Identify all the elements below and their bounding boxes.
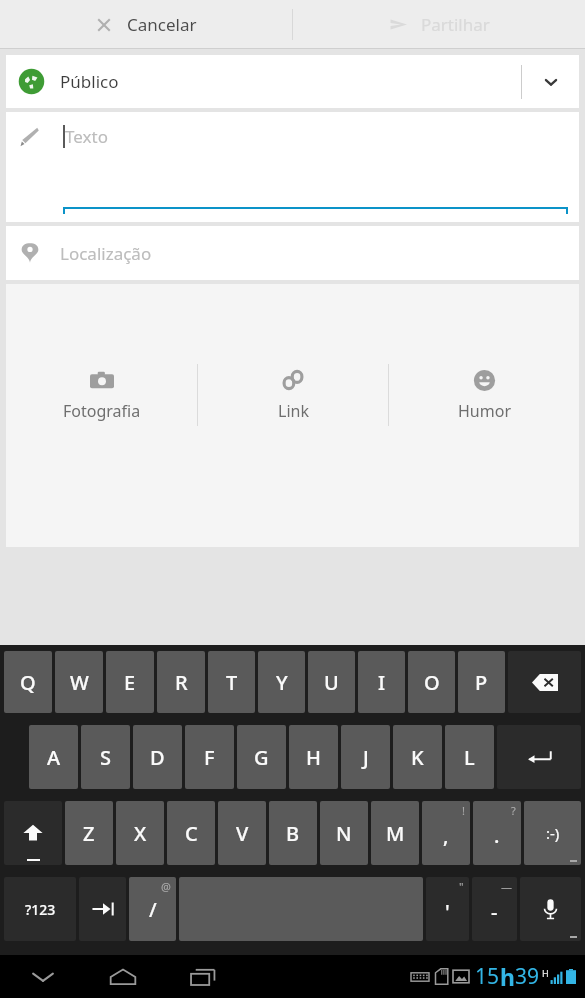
button[interactable]: Fotografia <box>6 357 197 433</box>
button[interactable]: @ <box>129 877 176 941</box>
staticText: X <box>134 820 147 847</box>
staticText: Y <box>276 669 288 696</box>
staticText: . <box>494 822 500 849</box>
staticText: F <box>204 744 215 771</box>
button[interactable]: Tab <box>79 877 126 941</box>
staticText: ' <box>445 898 450 925</box>
button[interactable]: Localização <box>6 226 579 280</box>
staticText: Q <box>20 669 36 696</box>
button[interactable]: Backspace <box>508 651 581 713</box>
button[interactable]: N <box>320 801 368 865</box>
button[interactable]: M <box>371 801 419 865</box>
button[interactable]: Shift <box>4 801 62 865</box>
staticText: S <box>100 744 111 771</box>
staticText: L <box>464 744 475 771</box>
staticText: P <box>475 669 488 696</box>
button[interactable]: U <box>308 651 355 713</box>
button[interactable]: E <box>106 651 154 713</box>
button[interactable]: Partilhar <box>293 0 585 49</box>
staticText: Link <box>278 400 309 422</box>
button[interactable]: Emoji <box>524 801 581 865</box>
button[interactable]: S <box>81 725 130 789</box>
button[interactable]: F <box>185 725 234 789</box>
staticText: ! <box>462 803 465 818</box>
button[interactable]: A <box>29 725 78 789</box>
button[interactable]: P <box>458 651 505 713</box>
button[interactable]: B <box>269 801 317 865</box>
staticText: ? <box>511 803 516 818</box>
staticText: " <box>459 879 464 894</box>
button[interactable]: R <box>157 651 205 713</box>
button[interactable]: Humor <box>389 357 579 433</box>
staticText: Cancelar <box>127 13 197 36</box>
button[interactable]: Texto <box>6 112 579 222</box>
staticText: Z <box>83 820 95 847</box>
staticText: , <box>443 822 449 849</box>
staticText: 15 <box>475 962 500 991</box>
staticText: C <box>185 820 198 847</box>
staticText: Humor <box>458 400 511 422</box>
button[interactable]: Voice input <box>520 877 581 941</box>
staticText: T <box>226 669 238 696</box>
staticText: — <box>501 879 512 894</box>
staticText: E <box>124 669 136 696</box>
staticText: Fotografia <box>63 400 141 422</box>
button[interactable]: G <box>237 725 286 789</box>
button[interactable]: Home <box>94 957 152 997</box>
staticText: H <box>542 967 549 979</box>
button[interactable]: O <box>408 651 455 713</box>
button[interactable]: Link <box>198 357 388 433</box>
button[interactable]: L <box>445 725 494 789</box>
staticText: O <box>424 669 440 696</box>
button[interactable]: H <box>289 725 338 789</box>
staticText: Localização <box>60 242 152 265</box>
button[interactable]: Y <box>258 651 305 713</box>
staticText: - <box>491 898 498 925</box>
staticText: Texto <box>65 125 108 148</box>
staticText: :-) <box>546 823 560 843</box>
staticText: D <box>150 744 165 771</box>
button[interactable]: C <box>167 801 215 865</box>
button[interactable]: Cancelar <box>0 0 292 49</box>
button[interactable]: Q <box>4 651 52 713</box>
staticText: ?123 <box>25 900 56 919</box>
button[interactable]: D <box>133 725 182 789</box>
staticText: Público <box>60 70 119 93</box>
button[interactable]: X <box>116 801 164 865</box>
button[interactable]: — <box>472 877 517 941</box>
staticText: A <box>47 744 61 771</box>
staticText: R <box>175 669 188 696</box>
button[interactable]: ! <box>422 801 470 865</box>
button[interactable]: Z <box>65 801 113 865</box>
button[interactable]: Recent apps <box>174 957 232 997</box>
staticText: / <box>149 896 157 923</box>
staticText: K <box>411 744 424 771</box>
staticText: @ <box>161 879 171 894</box>
button[interactable]: K <box>393 725 442 789</box>
button[interactable]: Enter <box>497 725 581 789</box>
staticText: V <box>236 820 249 847</box>
staticText: G <box>254 744 269 771</box>
button[interactable]: J <box>341 725 390 789</box>
staticText: I <box>378 669 386 696</box>
button[interactable]: Público <box>6 55 579 108</box>
staticText: M <box>386 820 405 847</box>
staticText: h <box>500 961 515 992</box>
button[interactable]: T <box>208 651 255 713</box>
staticText: U <box>324 669 339 696</box>
button[interactable]: ? <box>473 801 521 865</box>
button[interactable]: I <box>358 651 405 713</box>
button[interactable]: W <box>55 651 103 713</box>
button[interactable]: ?123 <box>4 877 76 941</box>
staticText: B <box>286 820 300 847</box>
staticText: 39 <box>515 962 540 991</box>
button[interactable]: V <box>218 801 266 865</box>
button[interactable]: " <box>426 877 469 941</box>
button[interactable]: Back <box>14 957 72 997</box>
staticText: Partilhar <box>421 13 490 36</box>
staticText: W <box>70 669 89 696</box>
staticText: N <box>336 820 352 847</box>
staticText: J <box>363 744 369 771</box>
staticText: H <box>306 744 321 771</box>
